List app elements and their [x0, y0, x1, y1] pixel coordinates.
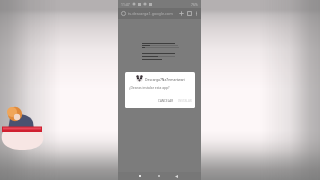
staticText: 11:47 [121, 2, 130, 7]
staticText: ¿Deseas instalar esta app? [129, 85, 170, 89]
button[interactable]: Tabs [186, 10, 193, 17]
button[interactable]: CANCELAR [157, 99, 175, 103]
staticText: Descarga7Na7nmartwari [145, 77, 185, 82]
button[interactable]: Recent apps [137, 173, 143, 179]
button[interactable]: INSTALAR [177, 99, 193, 103]
button[interactable]: Home [156, 173, 162, 179]
staticText: 76% [191, 2, 198, 7]
button[interactable]: New tab [178, 10, 185, 17]
button[interactable]: Reload page [120, 10, 127, 17]
button[interactable]: More options [193, 10, 200, 17]
button[interactable]: Back [173, 173, 179, 179]
staticText: ts.descarga1.google.com [128, 11, 173, 16]
